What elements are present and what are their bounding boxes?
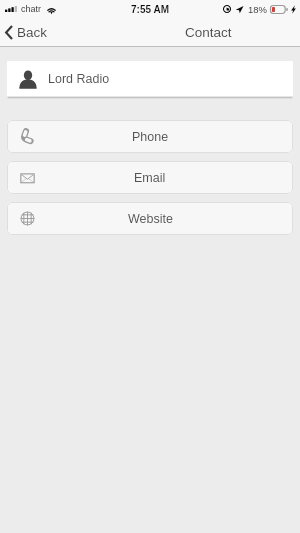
other: Location bbox=[235, 5, 244, 14]
staticText: Website bbox=[128, 212, 173, 226]
other: Wi-Fi bbox=[46, 6, 57, 13]
staticText: chatr bbox=[21, 4, 42, 14]
staticText: Back bbox=[17, 25, 48, 40]
button[interactable]: Email bbox=[7, 161, 293, 194]
staticText: Email bbox=[134, 171, 166, 185]
staticText: Lord Radio bbox=[48, 72, 110, 86]
staticText: 18% bbox=[248, 4, 268, 15]
other: Charging bbox=[291, 5, 296, 14]
other: Do not disturb bbox=[223, 5, 231, 13]
button[interactable]: Phone bbox=[7, 120, 293, 153]
staticText: Contact bbox=[185, 25, 232, 40]
other: Battery 18 percent bbox=[270, 5, 288, 14]
button[interactable]: Back bbox=[5, 18, 48, 47]
staticText: 7:55 AM bbox=[131, 4, 169, 15]
button[interactable]: Lord Radio bbox=[7, 61, 293, 99]
staticText: Phone bbox=[132, 130, 169, 144]
other: Signal strength bbox=[5, 6, 17, 12]
button[interactable]: Website bbox=[7, 202, 293, 235]
